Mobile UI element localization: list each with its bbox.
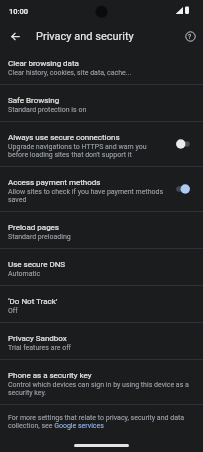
button[interactable]: Always use secure connections <box>0 122 203 166</box>
button[interactable]: Preload pages <box>0 212 203 248</box>
staticText: Use secure DNS <box>8 260 66 269</box>
button[interactable]: Help and feedback <box>180 26 200 46</box>
staticText: Safe Browsing <box>8 96 60 105</box>
staticText: Preload pages <box>8 223 59 232</box>
staticText: ‘Do Not Track’ <box>8 297 58 306</box>
button[interactable]: Toggle off <box>174 137 192 151</box>
button[interactable]: Use secure DNS <box>0 249 203 285</box>
staticText: 10:00 <box>9 7 29 16</box>
button[interactable]: Access payment methods <box>0 167 203 211</box>
staticText: Clear browsing data <box>8 59 79 68</box>
staticText: Control which devices can sign in by usi… <box>8 381 189 389</box>
staticText: Standard preloading <box>8 233 71 241</box>
staticText: Off <box>8 307 18 315</box>
staticText: Clear history, cookies, site data, cache… <box>8 69 132 77</box>
staticText: Allow sites to check if you have payment… <box>8 188 164 196</box>
staticText: security key. <box>8 389 47 397</box>
staticText: Privacy and security <box>36 30 134 43</box>
staticText: For more settings that relate to privacy… <box>8 414 195 430</box>
staticText: Always use secure connections <box>8 133 120 142</box>
button[interactable]: Toggle on <box>174 182 192 196</box>
staticText: ? <box>188 33 192 41</box>
staticText: Standard protection is on <box>8 106 87 114</box>
staticText: Trial features are off <box>8 344 72 352</box>
button[interactable]: Phone as a security key <box>0 360 203 404</box>
staticText: Access payment methods <box>8 178 101 187</box>
button[interactable]: Clear browsing data <box>0 48 203 84</box>
staticText: Upgrade navigations to HTTPS and warn yo… <box>8 143 147 151</box>
button[interactable]: ‘Do Not Track’ <box>0 286 203 322</box>
button[interactable]: Safe Browsing <box>0 85 203 121</box>
button[interactable]: Navigate up <box>5 26 25 46</box>
button[interactable]: Privacy Sandbox <box>0 323 203 359</box>
staticText: Automatic <box>8 270 41 278</box>
staticText: saved <box>8 196 27 204</box>
staticText: before loading sites that don't support … <box>8 151 132 159</box>
staticText: Privacy Sandbox <box>8 334 67 343</box>
staticText: Phone as a security key <box>8 371 92 380</box>
